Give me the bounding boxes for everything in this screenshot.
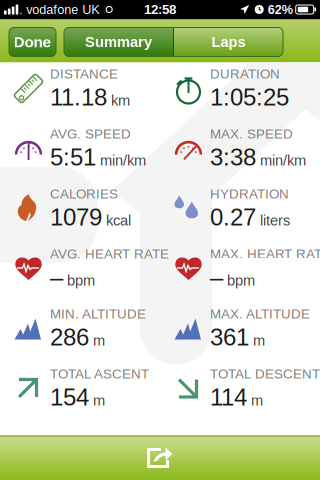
staticText: 114 xyxy=(210,384,247,411)
button[interactable]: Summary xyxy=(64,27,173,56)
staticText: liters xyxy=(256,212,290,229)
staticText: m xyxy=(89,392,105,409)
staticText: TOTAL DESCENT xyxy=(210,366,320,381)
staticText: Done xyxy=(13,33,51,50)
staticText: – xyxy=(210,264,223,291)
staticText: kcal xyxy=(102,212,131,229)
staticText: AVG. HEART RATE xyxy=(50,246,169,261)
staticText: bpm xyxy=(63,272,95,289)
button[interactable]: Done xyxy=(9,27,56,56)
staticText: km xyxy=(107,92,130,109)
staticText: 1:05:25 xyxy=(210,84,289,111)
staticText: MIN. ALTITUDE xyxy=(50,306,146,321)
staticText: Summary xyxy=(85,34,152,50)
staticText: DISTANCE xyxy=(50,66,118,81)
staticText: 286 xyxy=(50,324,89,351)
staticText: MAX. ALTITUDE xyxy=(210,306,310,321)
staticText: min/km xyxy=(96,152,146,169)
button[interactable]: Laps xyxy=(174,27,283,56)
staticText: bpm xyxy=(223,272,255,289)
staticText: 3:38 xyxy=(210,144,256,171)
staticText: m xyxy=(89,332,105,349)
staticText: 154 xyxy=(50,384,89,411)
staticText: m xyxy=(247,392,263,409)
staticText: MAX. SPEED xyxy=(210,126,293,141)
staticText: HYDRATION xyxy=(210,186,289,201)
staticText: 62% xyxy=(268,2,293,17)
staticText: – xyxy=(50,264,63,291)
staticText: DURATION xyxy=(210,66,280,81)
staticText: m xyxy=(249,332,265,349)
staticText: 1079 xyxy=(50,204,102,231)
staticText: Laps xyxy=(211,34,245,50)
staticText: vodafone UK xyxy=(26,2,99,17)
staticText: 0.27 xyxy=(210,204,256,231)
staticText: 11.18 xyxy=(50,84,107,111)
staticText: CALORIES xyxy=(50,186,118,201)
staticText: AVG. SPEED xyxy=(50,126,131,141)
staticText: min/km xyxy=(256,152,306,169)
staticText: 12:58 xyxy=(144,2,176,17)
button[interactable]: Share xyxy=(134,436,186,480)
staticText: TOTAL ASCENT xyxy=(50,366,149,381)
staticText: 5:51 xyxy=(50,144,96,171)
staticText: MAX. HEART RATE xyxy=(210,246,320,261)
staticText: 361 xyxy=(210,324,249,351)
